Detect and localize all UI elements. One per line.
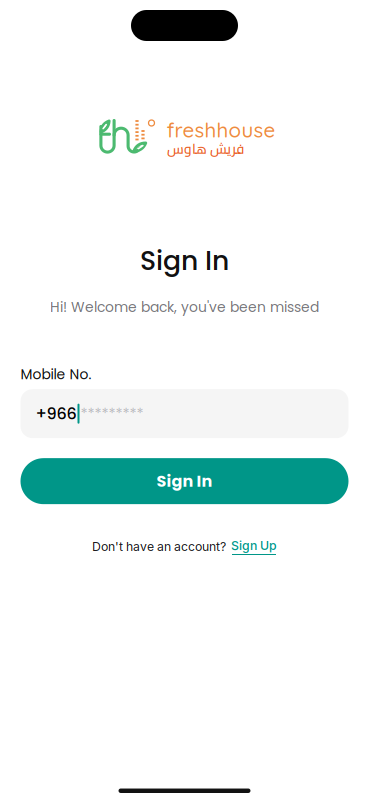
staticText: +966 <box>35 402 76 425</box>
staticText: Mobile No. <box>20 365 91 384</box>
staticText: Sign In <box>140 242 229 279</box>
button[interactable]: Sign In <box>20 458 348 504</box>
staticText: freshhouse <box>166 117 275 143</box>
staticText: Sign In <box>156 470 212 492</box>
staticText: ********* <box>80 403 143 424</box>
button[interactable]: Sign Up <box>231 538 277 555</box>
staticText: Sign Up <box>231 538 277 553</box>
staticText: Don't have an account? <box>92 539 226 554</box>
staticText: فريش هاوس <box>166 136 243 161</box>
staticText: Hi! Welcome back, you've been missed <box>50 297 319 317</box>
